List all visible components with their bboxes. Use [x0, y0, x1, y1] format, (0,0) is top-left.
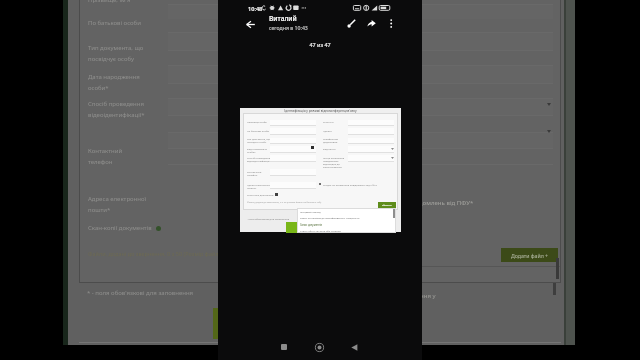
button[interactable]: Edit — [342, 14, 360, 32]
button[interactable]: Back — [241, 15, 259, 33]
staticText: Скан-копії документів — [247, 193, 274, 196]
staticText: Адреса — [323, 129, 332, 132]
staticText: Виталий — [269, 14, 297, 23]
staticText: Додати файл + — [511, 252, 549, 259]
staticText: Дата народження особи* — [88, 73, 140, 92]
staticText: Згоден на отримання повідомлень від ПФУ* — [323, 183, 378, 186]
staticText: Контактний телефон — [88, 147, 123, 166]
staticText: * - поля обов'язкові для заповнення — [87, 289, 194, 297]
staticText: Вид пенсії — [323, 147, 336, 150]
staticText: Місце отримання повідомлень від ПФУ* — [353, 199, 474, 207]
staticText: Тип документа, що посвідчує особу — [88, 44, 144, 63]
staticText: Тип документа, що посвідчує особу — [247, 137, 271, 143]
staticText: Файли, додані до звернення, 0 з 50 (Розм… — [247, 201, 322, 204]
staticText: Запис документів — [300, 223, 322, 226]
staticText: Місце отримання повідомлень відповідно д… — [323, 156, 345, 168]
staticText: сегодня в 10:43 — [269, 24, 308, 31]
staticText: 47 из 47 — [218, 41, 422, 48]
staticText: Спосіб проведення відеоідентифікації* — [88, 100, 145, 119]
staticText: Статус або її частини або сторони — [300, 229, 341, 232]
button[interactable]: Home — [309, 337, 329, 357]
staticText: РНОКПП — [323, 120, 334, 123]
button[interactable]: Recents — [274, 337, 294, 357]
staticText: По батькові особи — [88, 19, 141, 27]
staticText: Вид отримувача особи* — [247, 147, 267, 153]
button[interactable]: Back — [344, 337, 364, 357]
staticText: 10:48 — [248, 5, 263, 13]
staticText: Ідентифікація у режимі відеоконференцзв'… — [240, 109, 401, 113]
staticText: Скан-копії документів — [88, 224, 152, 232]
staticText: По батькові особи — [247, 129, 270, 132]
staticText: Запис на прийом до кваліфікованого спеці… — [300, 216, 360, 219]
staticText: Місцевий заклад — [300, 210, 321, 213]
button[interactable]: More options — [382, 14, 400, 32]
staticText: Файли, додані до звернення, 0 з 50 (Розм… — [88, 250, 266, 257]
staticText: Спосіб проведення відеоідентифікації* — [247, 156, 271, 162]
staticText: Прізвище, ім'я — [88, 0, 131, 4]
button[interactable]: Додати файл + — [501, 248, 558, 262]
staticText: Телефонний додатковий — [323, 137, 339, 143]
staticText: Зберегти — [382, 204, 392, 207]
staticText: - поля обов'язкові для заповнення — [247, 217, 290, 220]
button[interactable]: Share — [362, 14, 380, 32]
staticText: Адреса електронної пошти* — [247, 183, 272, 189]
staticText: Адреса електронної пошти* — [88, 195, 147, 214]
staticText: перебування у — [393, 292, 436, 300]
staticText: Контактний телефон — [247, 170, 262, 176]
staticText: Прізвище особи — [247, 120, 267, 123]
